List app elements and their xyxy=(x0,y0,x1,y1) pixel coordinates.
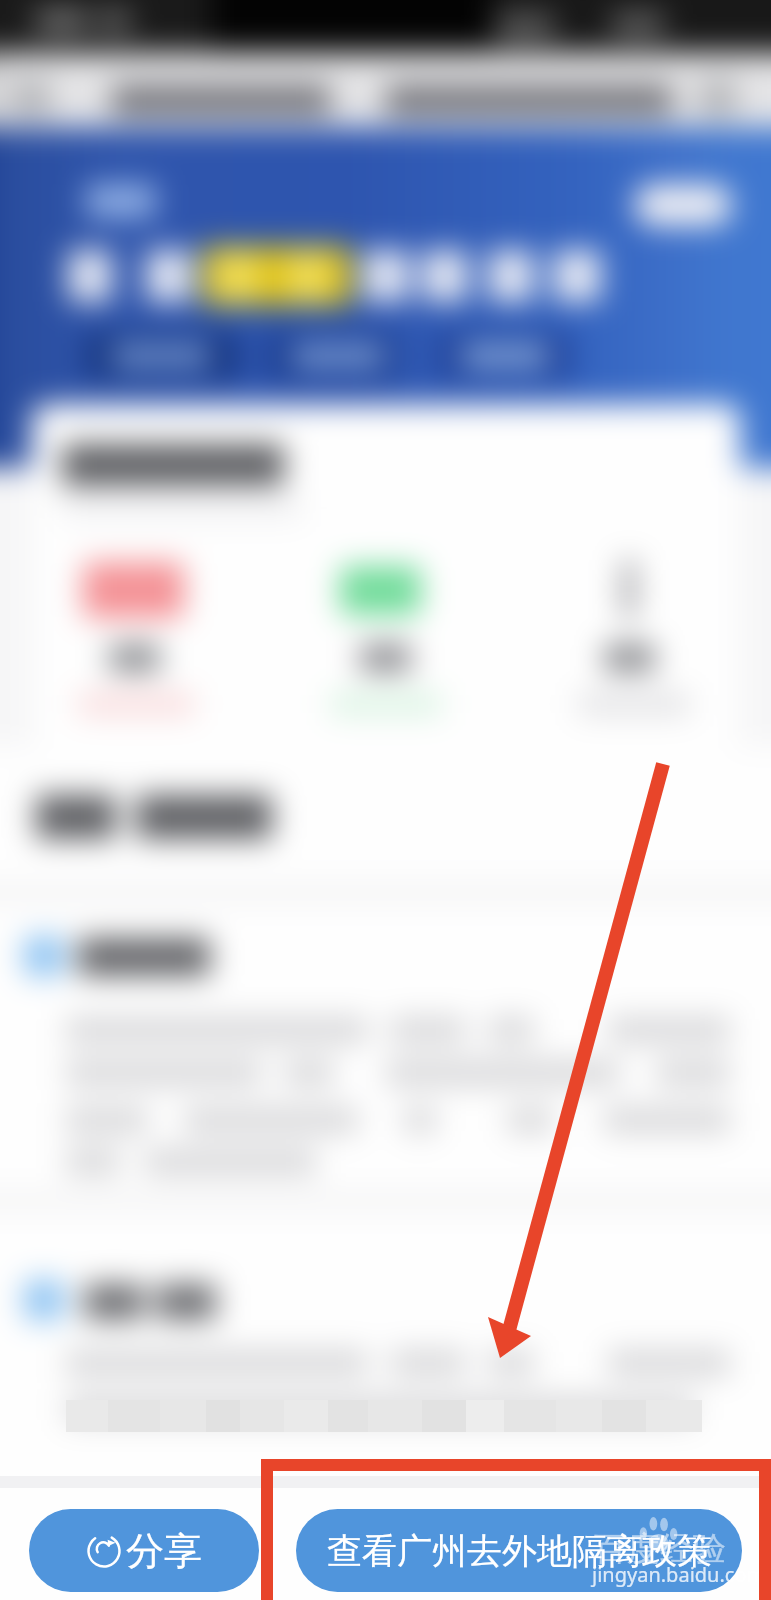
button[interactable]: 查看广州去外地隔离政策 xyxy=(296,1509,742,1592)
button[interactable]: Share xyxy=(29,1509,259,1592)
staticText: 百度经验 xyxy=(594,1528,726,1570)
staticText: 分享 xyxy=(126,1527,202,1575)
staticText: 查看广州去外地隔离政策 xyxy=(327,1529,712,1573)
other: Share xyxy=(86,1533,122,1569)
staticText: jingyan.baidu.com xyxy=(592,1561,766,1588)
